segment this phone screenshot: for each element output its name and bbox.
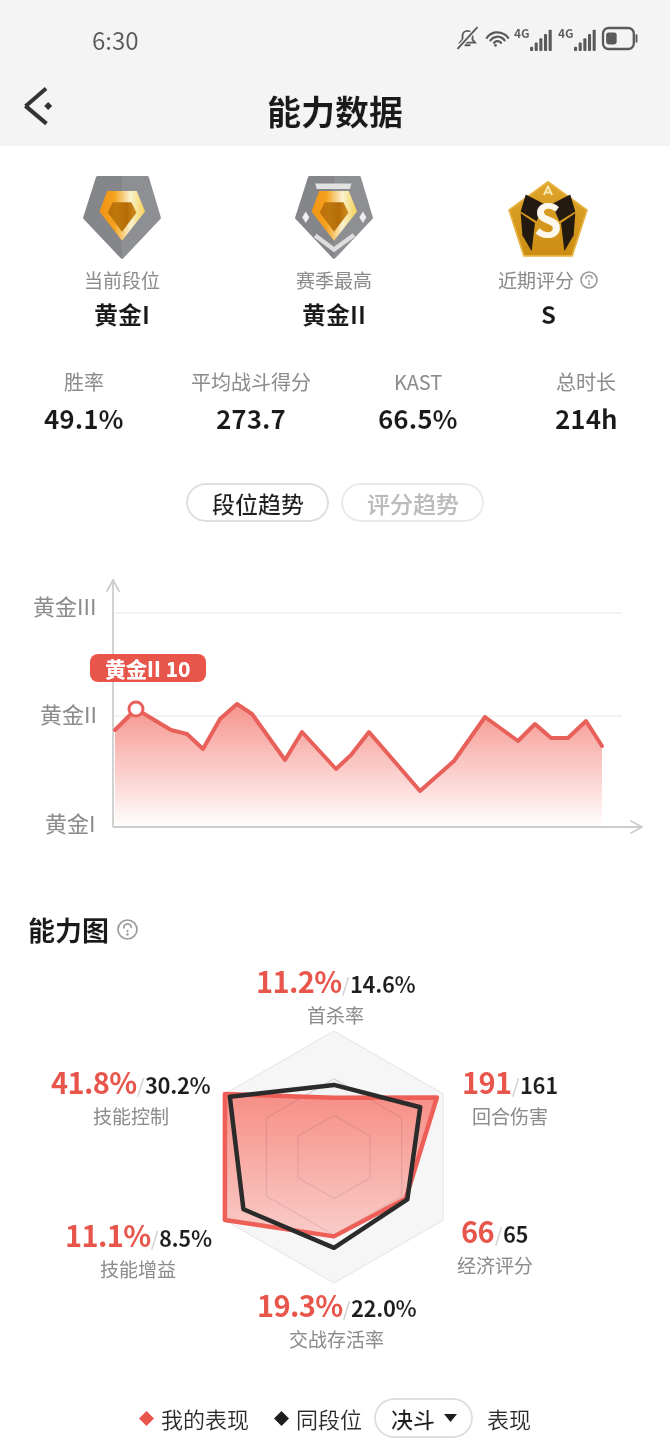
staticText: 273.7 xyxy=(216,399,286,437)
staticText: 当前段位 xyxy=(84,266,161,294)
staticText: 66 xyxy=(461,1209,495,1251)
staticText: 161 xyxy=(520,1068,558,1100)
staticText: 能力数据 xyxy=(0,86,670,135)
staticText: S xyxy=(534,186,562,250)
staticText: 6:30 xyxy=(92,22,139,57)
staticText: / xyxy=(495,1220,503,1248)
staticText: 黄金II xyxy=(302,296,366,331)
staticText: 黄金II 10 xyxy=(105,654,191,681)
staticText: 总时长 xyxy=(556,367,616,396)
staticText: 胜率 xyxy=(64,367,104,396)
staticText: 平均战斗得分 xyxy=(191,367,311,396)
button[interactable]: 段位趋势 xyxy=(186,483,329,522)
staticText: 4G xyxy=(514,24,530,41)
staticText: 65 xyxy=(503,1217,529,1249)
staticText: S xyxy=(541,296,556,331)
button[interactable]: 决斗 xyxy=(374,1398,473,1438)
staticText: 近期评分 xyxy=(498,266,575,294)
staticText: 黄金I xyxy=(45,806,96,838)
staticText: 8.5% xyxy=(159,1221,212,1253)
staticText: 决斗 xyxy=(391,1402,436,1434)
staticText: 评分趋势 xyxy=(367,486,459,519)
button[interactable]: 我的表现 xyxy=(139,1402,250,1434)
staticText: 41.8% xyxy=(51,1060,137,1102)
staticText: 能力图 xyxy=(28,910,109,949)
staticText: 黄金I xyxy=(94,296,150,331)
staticText: 11.2% xyxy=(256,959,342,1001)
staticText: / xyxy=(342,970,350,998)
staticText: 首杀率 xyxy=(307,1001,365,1029)
staticText: 同段位 xyxy=(296,1402,363,1434)
staticText: 11.1% xyxy=(65,1213,151,1255)
staticText: 黄金III xyxy=(33,589,97,621)
staticText: 66.5% xyxy=(378,399,458,437)
staticText: 回合伤害 xyxy=(472,1102,549,1130)
staticText: 我的表现 xyxy=(161,1402,250,1434)
staticText: 191 xyxy=(462,1060,512,1102)
button[interactable]: Back xyxy=(12,78,68,134)
staticText: 赛季最高 xyxy=(296,266,373,294)
staticText: 经济评分 xyxy=(457,1251,534,1279)
staticText: 19.3% xyxy=(257,1283,343,1325)
staticText: 技能控制 xyxy=(93,1102,170,1130)
staticText: / xyxy=(343,1294,351,1322)
button[interactable]: 评分趋势 xyxy=(341,483,484,522)
staticText: 段位趋势 xyxy=(212,486,304,519)
staticText: 表现 xyxy=(487,1402,532,1434)
staticText: 交战存活率 xyxy=(289,1325,385,1353)
staticText: / xyxy=(137,1071,145,1099)
staticText: 30.2% xyxy=(145,1068,211,1100)
staticText: 技能增益 xyxy=(100,1255,177,1283)
staticText: 214h xyxy=(555,399,618,437)
staticText: / xyxy=(512,1071,520,1099)
staticText: / xyxy=(151,1224,159,1252)
staticText: KAST xyxy=(394,367,443,396)
staticText: 14.6% xyxy=(350,967,416,999)
staticText: 22.0% xyxy=(351,1291,417,1323)
staticText: 4G xyxy=(558,24,574,41)
button[interactable]: 同段位 xyxy=(274,1402,363,1434)
staticText: 黄金II xyxy=(40,697,97,729)
staticText: 49.1% xyxy=(44,399,124,437)
